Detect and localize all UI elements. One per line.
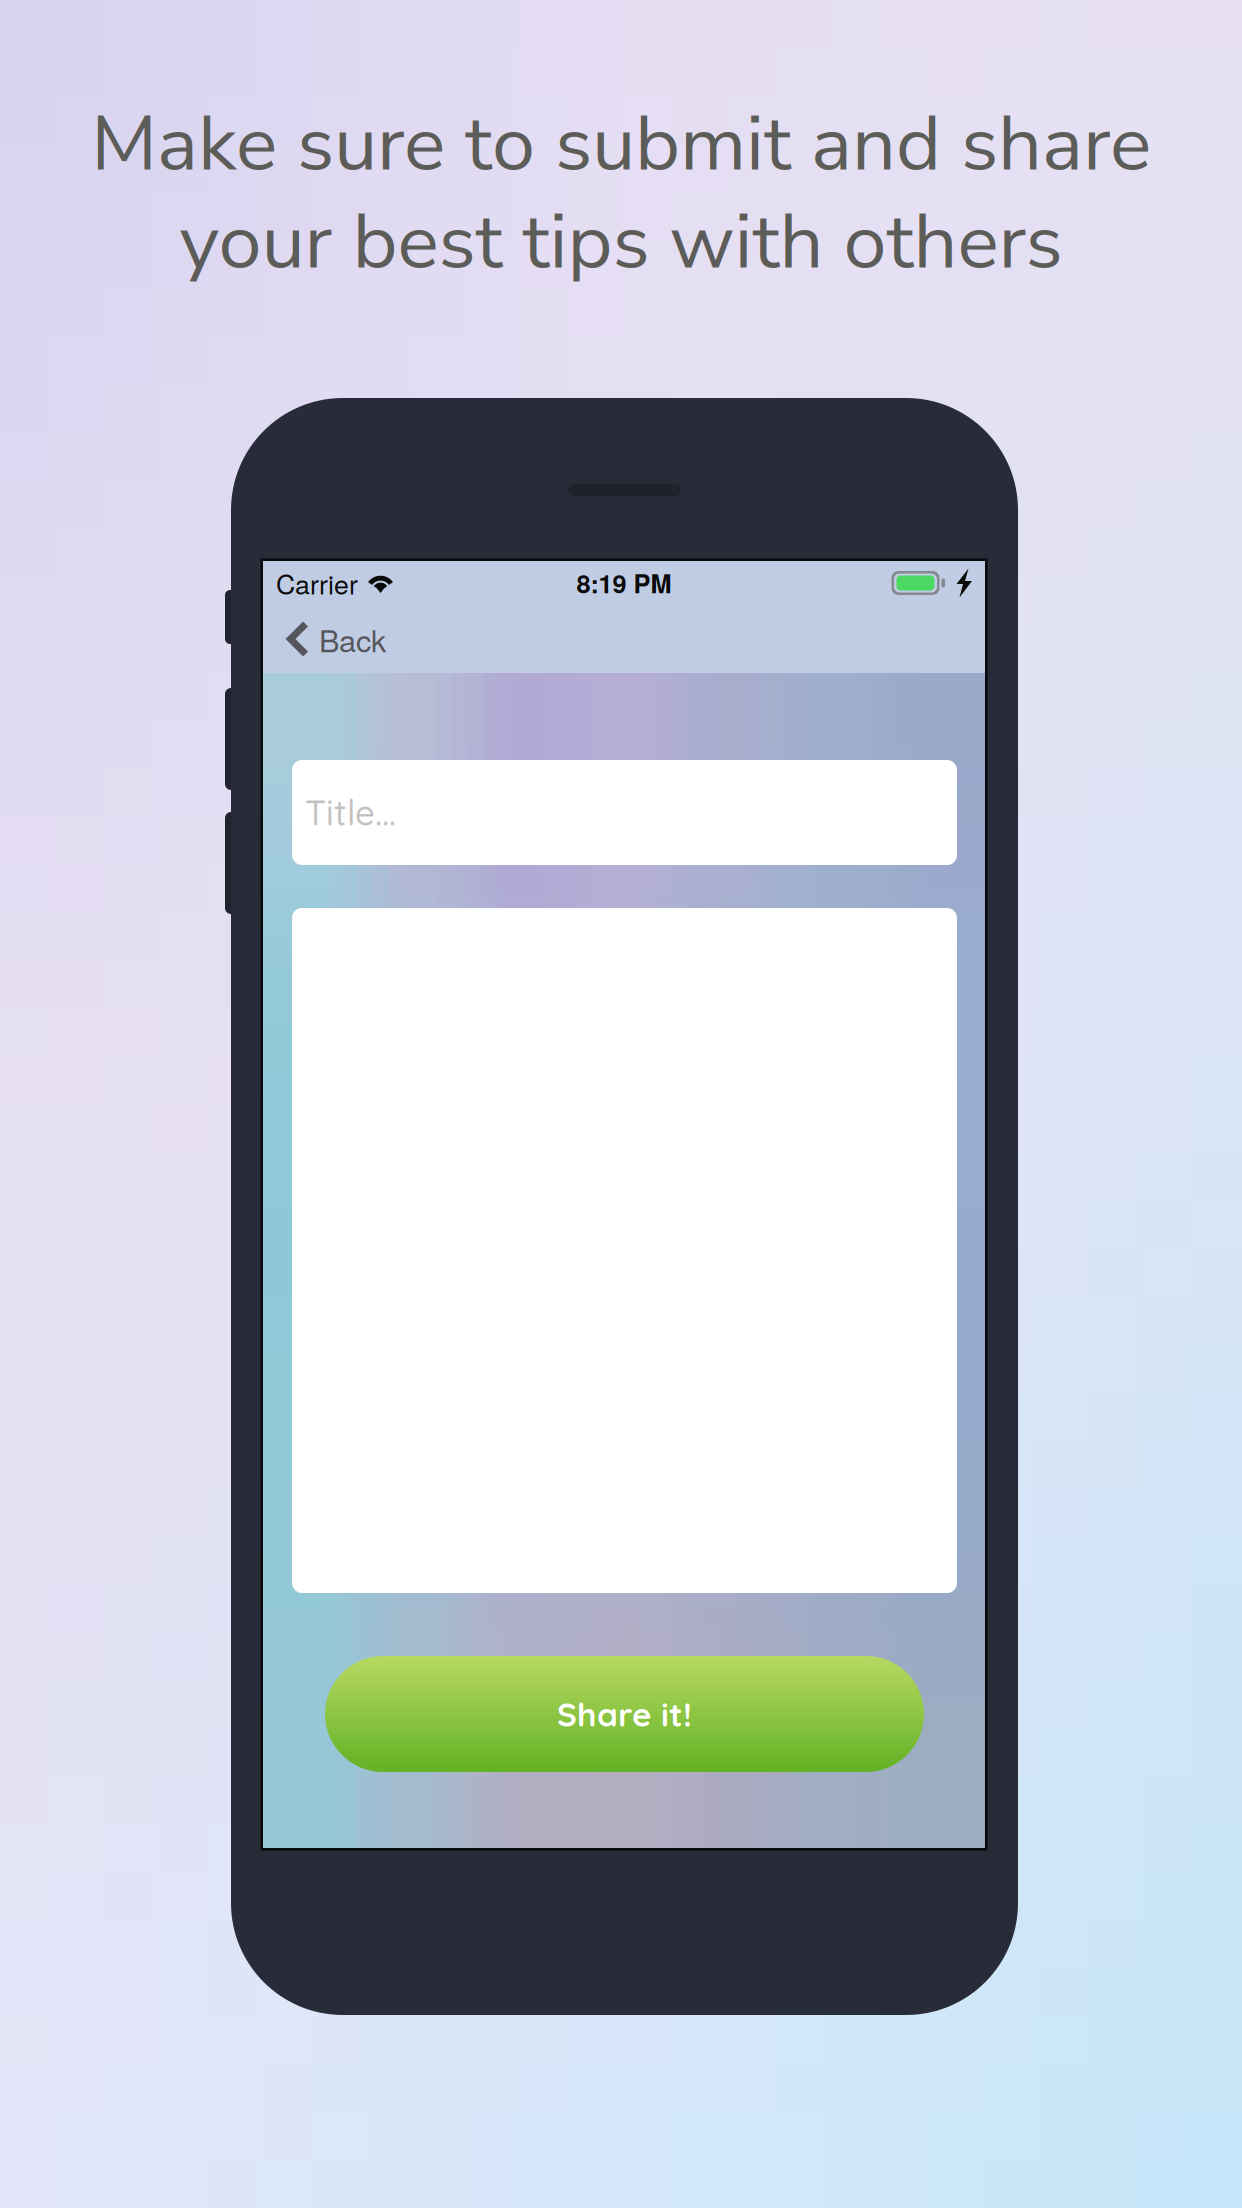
staticText: Title... (305, 791, 396, 834)
staticText: your best tips with others (179, 189, 1062, 295)
staticText: Back (319, 617, 386, 661)
staticText: Carrier (276, 564, 358, 602)
button[interactable]: Share it! (325, 1656, 924, 1772)
button[interactable]: Title... (292, 760, 957, 865)
staticText: Make sure to submit and share (91, 91, 1151, 197)
button[interactable]: Back (263, 605, 408, 673)
staticText: Share it! (557, 1693, 692, 1735)
staticText: 8:19 PM (576, 565, 671, 601)
